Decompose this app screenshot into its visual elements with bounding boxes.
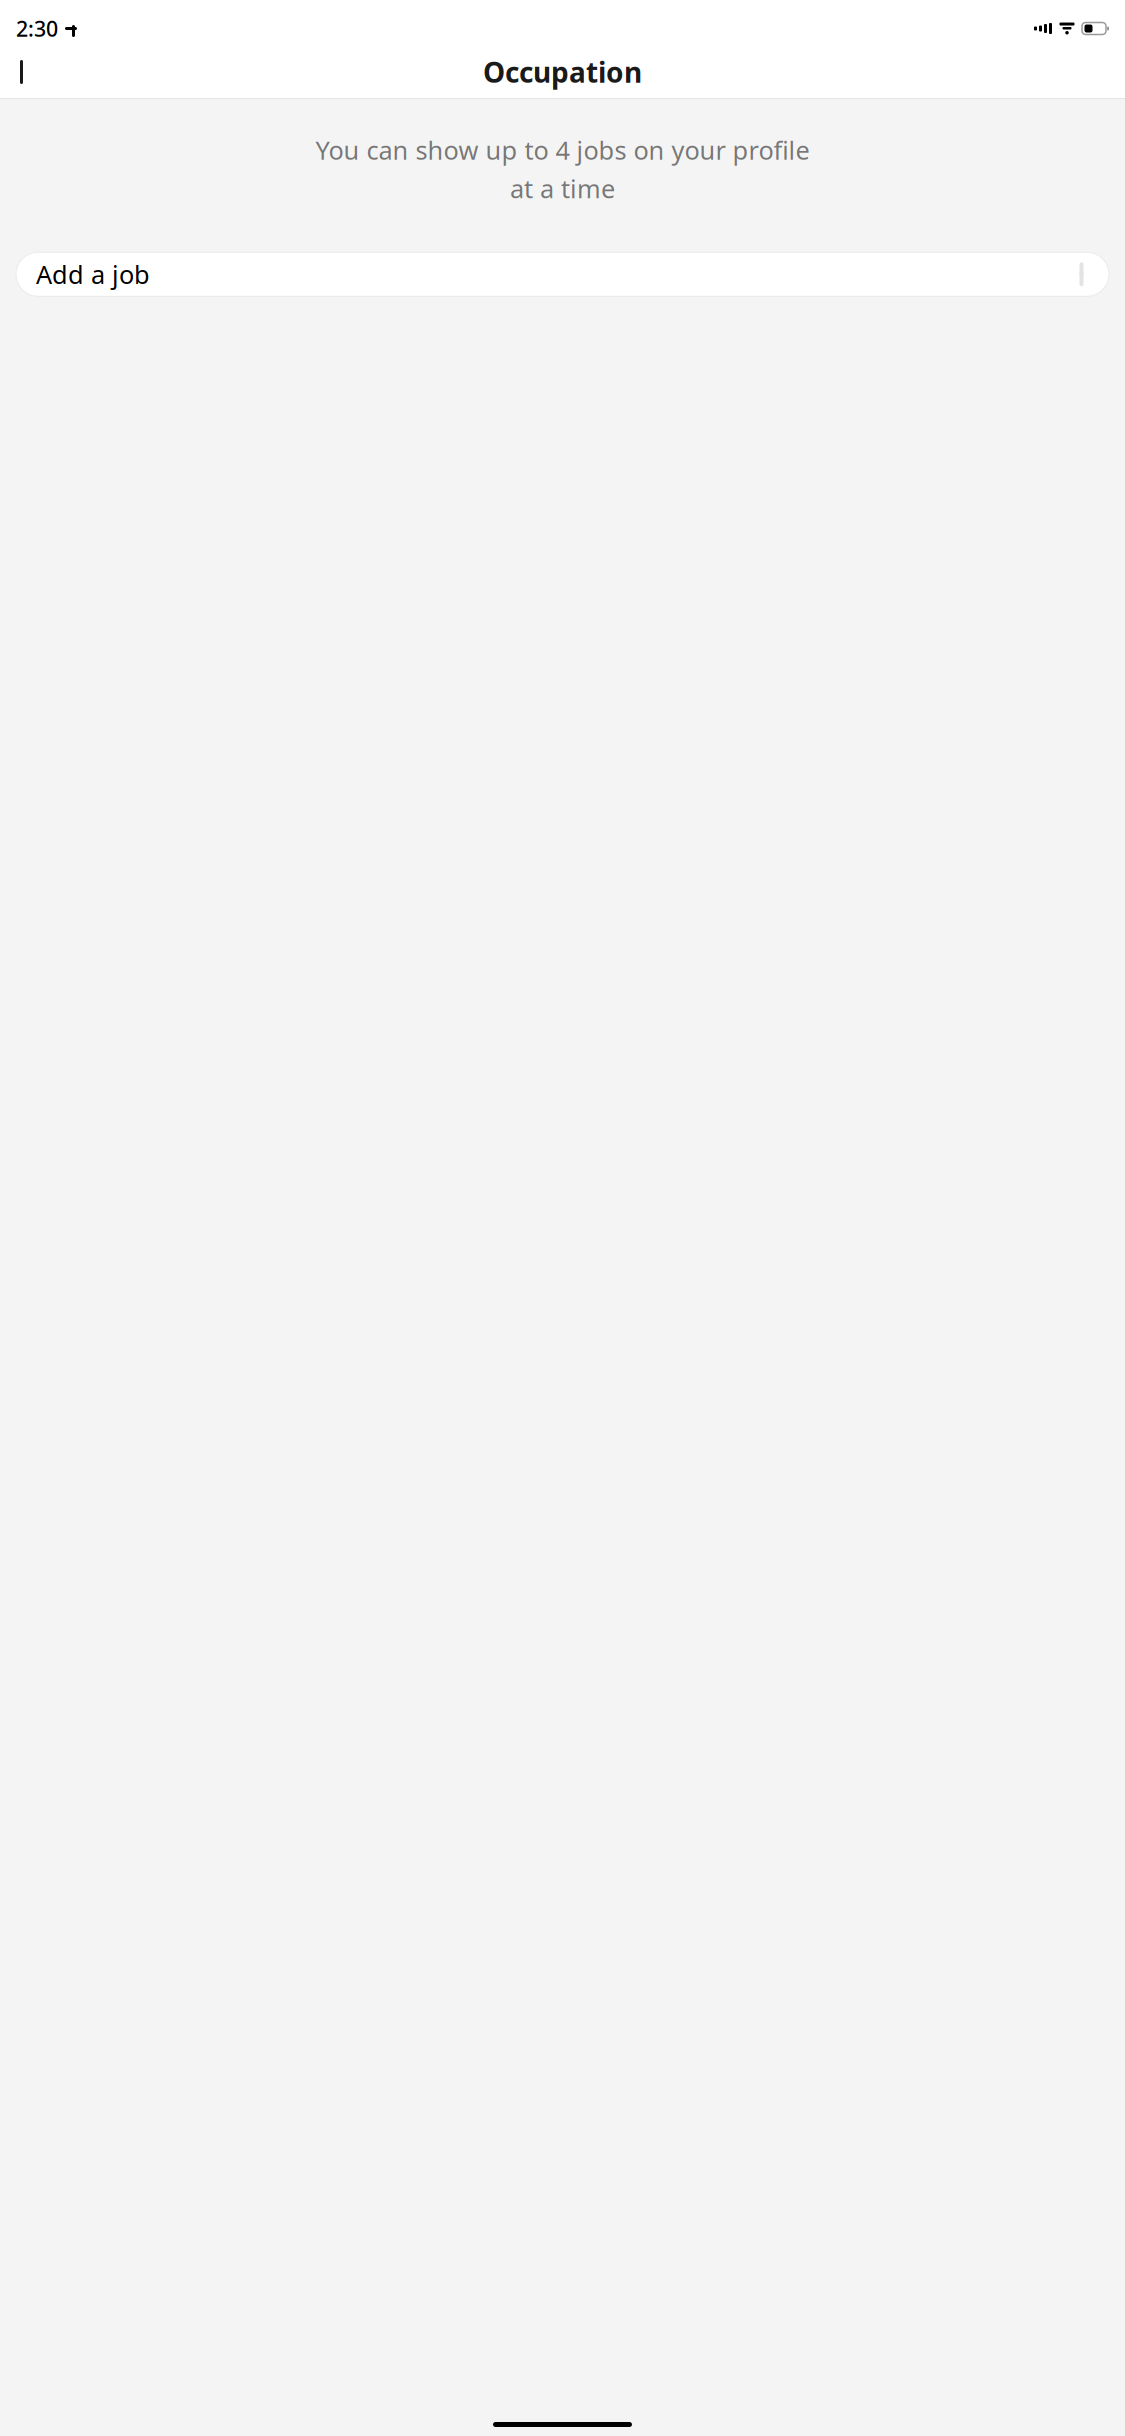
staticText: at a time bbox=[510, 172, 615, 205]
button[interactable]: Add a job bbox=[16, 252, 1109, 296]
staticText: You can show up to 4 jobs on your profil… bbox=[315, 133, 809, 167]
staticText: Add a job bbox=[36, 257, 150, 291]
staticText: 2:30 bbox=[16, 14, 58, 43]
staticText: Occupation bbox=[483, 53, 642, 91]
button[interactable]: Back bbox=[0, 50, 48, 94]
